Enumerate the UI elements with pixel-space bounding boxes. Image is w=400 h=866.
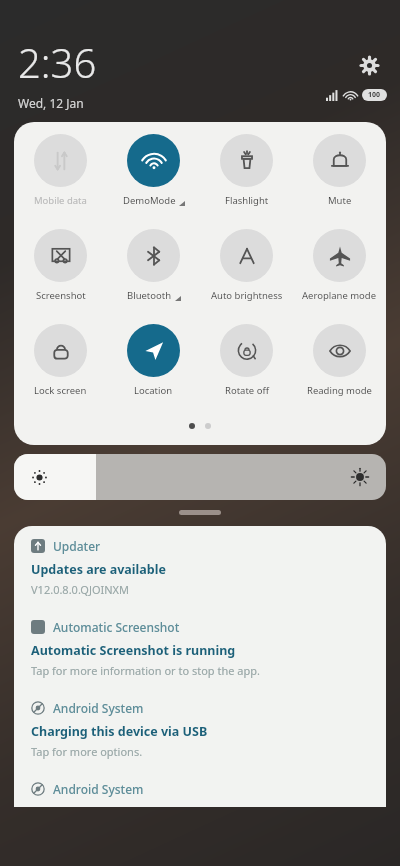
- staticText: Tap for more information or to stop the …: [31, 663, 260, 678]
- button[interactable]: Android System: [14, 769, 386, 807]
- staticText: Bluetooth: [127, 289, 172, 302]
- button[interactable]: Rotate off: [200, 324, 293, 419]
- button[interactable]: Screenshot: [14, 229, 107, 324]
- staticText: Mobile data: [34, 194, 87, 207]
- button[interactable]: DemoMode: [107, 134, 200, 229]
- button[interactable]: Location: [107, 324, 200, 419]
- staticText: Android System: [53, 781, 144, 797]
- button[interactable]: Settings: [352, 48, 386, 82]
- staticText: 100: [368, 90, 381, 100]
- button[interactable]: Reading mode: [293, 324, 386, 419]
- button[interactable]: Mobile data: [14, 134, 107, 229]
- staticText: Automatic Screenshot is running: [31, 642, 236, 659]
- staticText: Mute: [328, 194, 352, 207]
- staticText: Reading mode: [307, 384, 372, 397]
- staticText: Android System: [53, 700, 144, 716]
- staticText: DemoMode: [123, 194, 176, 207]
- staticText: V12.0.8.0.QJOINXM: [31, 582, 129, 597]
- staticText: Updates are available: [31, 561, 166, 578]
- staticText: Flashlight: [225, 194, 269, 207]
- button[interactable]: Aeroplane mode: [293, 229, 386, 324]
- button[interactable]: Bluetooth: [107, 229, 200, 324]
- button[interactable]: Auto brightness: [200, 229, 293, 324]
- staticText: Charging this device via USB: [31, 723, 208, 740]
- button[interactable]: Automatic Screenshot: [14, 607, 386, 688]
- staticText: Tap for more options.: [31, 744, 143, 759]
- button[interactable]: Lock screen: [14, 324, 107, 419]
- staticText: Screenshot: [36, 289, 86, 302]
- staticText: Updater: [53, 538, 101, 554]
- button[interactable]: [14, 454, 386, 500]
- staticText: Location: [134, 384, 173, 397]
- staticText: 2:36: [18, 35, 97, 89]
- staticText: Auto brightness: [211, 289, 283, 302]
- staticText: Rotate off: [225, 384, 269, 397]
- button[interactable]: Flashlight: [200, 134, 293, 229]
- button[interactable]: Mute: [293, 134, 386, 229]
- staticText: Wed, 12 Jan: [18, 95, 84, 110]
- button[interactable]: Updater: [14, 526, 386, 607]
- staticText: Aeroplane mode: [302, 289, 377, 302]
- staticText: Lock screen: [34, 384, 87, 397]
- staticText: Automatic Screenshot: [53, 619, 180, 635]
- button[interactable]: Android System: [14, 688, 386, 769]
